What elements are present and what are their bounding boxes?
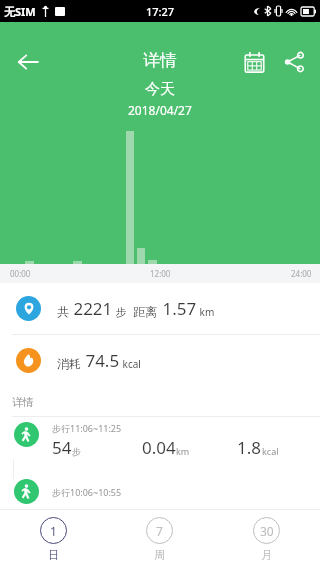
staticText: 1.8 (237, 436, 262, 459)
button[interactable]: 1 (0, 510, 106, 569)
staticText: 日 (48, 548, 59, 562)
staticText: 详情 (12, 395, 34, 409)
button[interactable]: Back (8, 42, 48, 82)
staticText: 74.5 (81, 349, 120, 372)
button[interactable]: Share (274, 42, 314, 82)
button[interactable]: Calendar (234, 42, 274, 82)
button[interactable]: 30 (213, 510, 320, 569)
staticText: 步行11:06~11:25 (52, 422, 122, 434)
staticText: kcal (120, 357, 141, 371)
staticText: 7 (156, 523, 163, 539)
staticText: 无SIM (4, 4, 36, 19)
staticText: km (197, 305, 215, 319)
staticText: 54 (52, 436, 72, 459)
button[interactable]: 步行10:06~10:55 (0, 479, 320, 504)
staticText: 1 (50, 523, 57, 539)
button[interactable]: 消耗 (0, 335, 320, 386)
staticText: 0.04 (142, 436, 176, 459)
button[interactable]: 7 (106, 510, 213, 569)
staticText: 月 (261, 548, 272, 562)
staticText: kcal (262, 445, 279, 457)
staticText: 步 (72, 446, 81, 457)
staticText: 今天 (145, 80, 175, 99)
staticText: 2018/04/27 (128, 102, 192, 118)
staticText: 12:00 (150, 268, 171, 279)
staticText: 17:27 (146, 4, 175, 19)
staticText: 2221 (69, 297, 113, 320)
staticText: 详情 (143, 50, 177, 71)
staticText: 30 (260, 523, 274, 539)
staticText: 00:00 (10, 268, 31, 279)
staticText: 周 (154, 548, 165, 562)
staticText: 24:00 (291, 268, 312, 279)
button[interactable]: 共 (0, 283, 320, 334)
staticText: 距离 (127, 303, 158, 319)
staticText: 1.57 (158, 297, 197, 320)
staticText: 消耗 (57, 356, 81, 371)
staticText: 步行10:06~10:55 (52, 486, 122, 498)
button[interactable]: 步行11:06~11:25 (0, 417, 320, 459)
staticText: 步 (113, 304, 127, 319)
staticText: km (176, 445, 190, 457)
staticText: 共 (57, 304, 69, 319)
